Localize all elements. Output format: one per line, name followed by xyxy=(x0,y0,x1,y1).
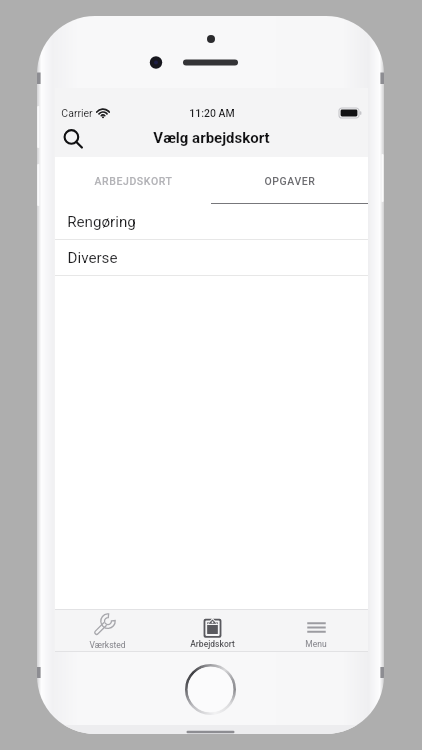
staticText: Diverse xyxy=(67,249,118,267)
staticText: 11:20 AM xyxy=(189,107,235,119)
button[interactable]: OPGAVER xyxy=(211,157,368,204)
button[interactable]: Search xyxy=(56,122,90,156)
staticText: Rengøring xyxy=(67,213,136,231)
button[interactable]: Menu xyxy=(264,610,368,651)
button[interactable]: Diverse xyxy=(55,240,368,276)
staticText: Carrier xyxy=(61,107,93,119)
staticText: Arbejdskort xyxy=(190,639,235,649)
staticText: ARBEJDSKORT xyxy=(94,175,173,187)
staticText: OPGAVER xyxy=(264,175,316,187)
staticText: Menu xyxy=(305,639,327,649)
button[interactable]: Rengøring xyxy=(55,204,368,240)
button[interactable]: Værksted xyxy=(55,610,160,651)
staticText: Vælg arbejdskort xyxy=(153,129,270,147)
staticText: Værksted xyxy=(89,640,126,650)
button[interactable]: ARBEJDSKORT xyxy=(55,157,211,204)
button[interactable]: Arbejdskort xyxy=(160,610,264,651)
